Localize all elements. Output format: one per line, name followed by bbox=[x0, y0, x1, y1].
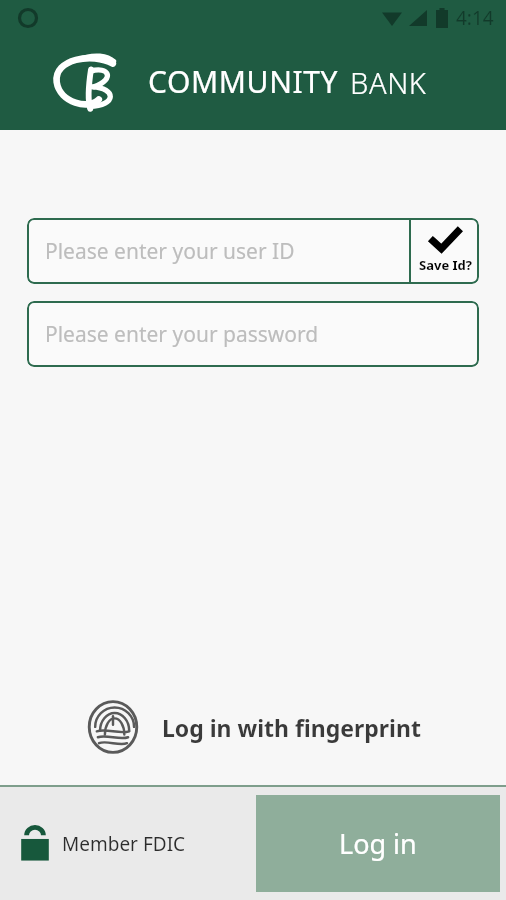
button[interactable]: Member FDIC bbox=[20, 826, 186, 862]
staticText: COMMUNITY bbox=[148, 61, 339, 102]
staticText: 4:14 bbox=[456, 5, 494, 31]
staticText: Member FDIC bbox=[62, 831, 186, 857]
staticText: Please enter your user ID bbox=[45, 237, 295, 266]
staticText: Please enter your password bbox=[45, 320, 319, 349]
button[interactable]: Log in bbox=[256, 795, 500, 892]
staticText: Log in bbox=[339, 825, 417, 862]
staticText: Save Id? bbox=[419, 256, 472, 274]
button[interactable]: Log in with fingerprint bbox=[76, 692, 431, 762]
button[interactable]: Please enter your user ID bbox=[27, 218, 409, 284]
staticText: Log in with fingerprint bbox=[162, 712, 421, 743]
staticText: BANK bbox=[350, 63, 427, 102]
button[interactable]: Please enter your password bbox=[27, 301, 479, 367]
button[interactable]: Save Id bbox=[411, 218, 479, 284]
